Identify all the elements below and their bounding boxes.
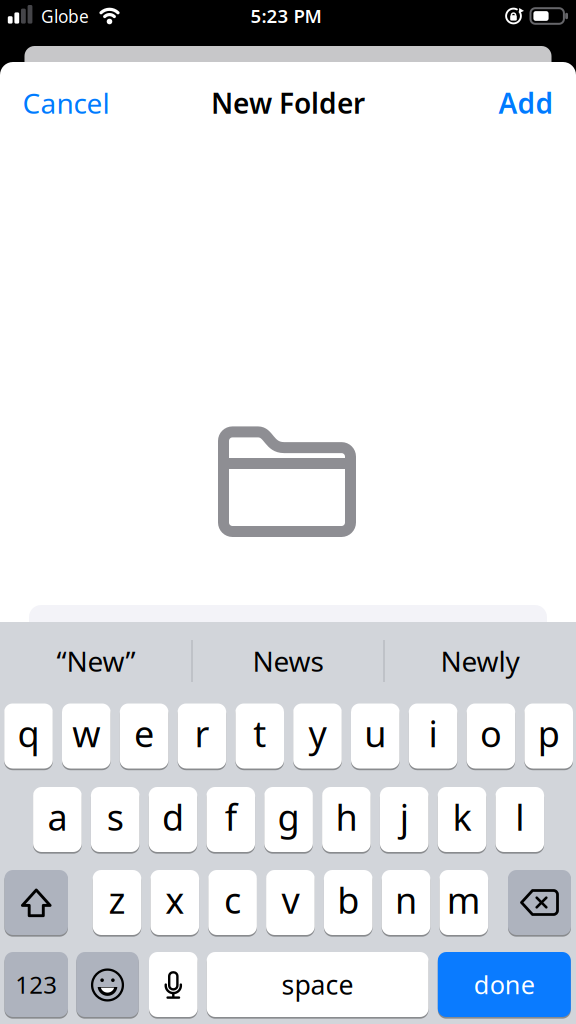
button[interactable]: Add	[498, 84, 553, 122]
button[interactable]: c	[208, 870, 257, 935]
staticText: u	[364, 709, 386, 757]
staticText: h	[335, 793, 357, 841]
staticText: space	[282, 967, 354, 1002]
button[interactable]: x	[150, 870, 199, 935]
button[interactable]: a	[33, 787, 82, 852]
button[interactable]: Dictate	[149, 952, 198, 1017]
button[interactable]: Delete	[508, 870, 571, 935]
staticText: z	[108, 876, 125, 924]
button[interactable]: s	[91, 787, 139, 852]
staticText: r	[194, 709, 209, 757]
button[interactable]: i	[409, 703, 457, 768]
staticText: x	[165, 876, 184, 924]
staticText: d	[162, 793, 184, 841]
staticText: New Folder	[211, 84, 365, 122]
button[interactable]: u	[351, 703, 400, 768]
staticText: 5:23 PM	[250, 3, 321, 28]
button[interactable]: l	[495, 787, 544, 852]
button[interactable]: z	[93, 870, 141, 935]
button[interactable]: News	[252, 642, 323, 680]
staticText: 123	[15, 969, 57, 1000]
staticText: y	[308, 709, 326, 757]
staticText: l	[515, 793, 524, 841]
button[interactable]: “New”	[56, 642, 135, 680]
button[interactable]: Cancel	[22, 84, 109, 122]
button[interactable]: d	[149, 787, 197, 852]
button[interactable]: f	[206, 787, 255, 852]
button[interactable]: m	[439, 870, 488, 935]
staticText: “New”	[56, 642, 135, 680]
button[interactable]: o	[467, 703, 515, 768]
button[interactable]: v	[266, 870, 315, 935]
button[interactable]: b	[324, 870, 372, 935]
staticText: j	[400, 793, 409, 841]
button[interactable]: t	[235, 703, 284, 768]
staticText: p	[538, 709, 560, 757]
staticText: o	[480, 709, 502, 757]
staticText: Newly	[440, 642, 519, 680]
staticText: n	[395, 876, 417, 924]
staticText: s	[107, 793, 124, 841]
button[interactable]: Shift	[4, 870, 68, 935]
staticText: v	[281, 876, 299, 924]
button[interactable]: r	[178, 703, 226, 768]
staticText: k	[452, 793, 471, 841]
button[interactable]: g	[264, 787, 313, 852]
staticText: Add	[498, 84, 553, 122]
button[interactable]: Newly	[440, 642, 519, 680]
button[interactable]: y	[293, 703, 342, 768]
staticText: Globe	[41, 5, 89, 28]
staticText: b	[337, 876, 359, 924]
button[interactable]: w	[62, 703, 111, 768]
staticText: m	[447, 876, 481, 924]
staticText: f	[225, 793, 237, 841]
staticText: i	[429, 709, 438, 757]
staticText: Cancel	[22, 84, 109, 122]
button[interactable]: q	[4, 703, 53, 768]
staticText: done	[474, 968, 535, 1001]
button[interactable]: n	[382, 870, 430, 935]
button[interactable]: Emoji	[76, 952, 139, 1017]
staticText: t	[253, 709, 266, 757]
button[interactable]: 123	[4, 952, 68, 1017]
button[interactable]: done	[438, 952, 571, 1017]
staticText: q	[17, 709, 39, 757]
staticText: c	[224, 876, 241, 924]
staticText: a	[47, 793, 67, 841]
staticText: w	[72, 709, 100, 757]
button[interactable]: e	[120, 703, 168, 768]
staticText: g	[278, 793, 300, 841]
staticText: News	[252, 642, 323, 680]
button[interactable]: k	[438, 787, 486, 852]
button[interactable]: Folder name	[29, 605, 547, 661]
button[interactable]: space	[207, 952, 428, 1017]
staticText: e	[134, 709, 154, 757]
button[interactable]: h	[322, 787, 371, 852]
button[interactable]: j	[380, 787, 428, 852]
button[interactable]: p	[524, 703, 573, 768]
